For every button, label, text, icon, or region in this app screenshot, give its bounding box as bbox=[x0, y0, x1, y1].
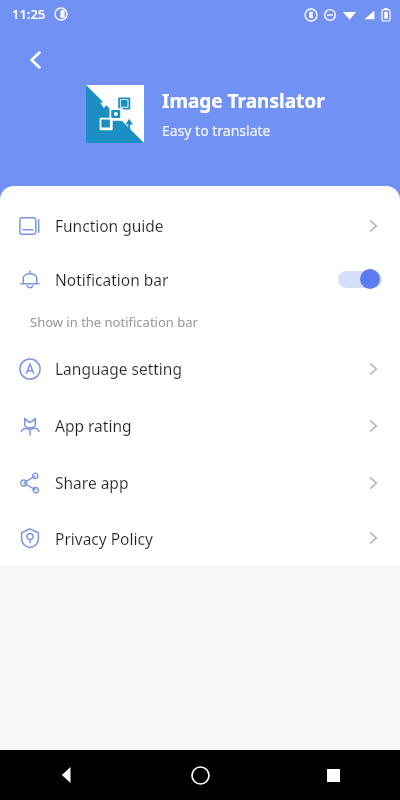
button[interactable]: App rating bbox=[0, 397, 400, 454]
staticText: 11:25 bbox=[12, 5, 46, 23]
staticText: Show in the notification bar bbox=[30, 313, 198, 331]
button[interactable]: Notification bar bbox=[0, 254, 400, 340]
staticText: Image Translator bbox=[162, 88, 325, 114]
button[interactable]: Home bbox=[134, 750, 267, 800]
staticText: Notification bar bbox=[55, 269, 169, 290]
button[interactable]: Back bbox=[14, 38, 58, 82]
staticText: Easy to translate bbox=[162, 121, 271, 140]
staticText: Language setting bbox=[55, 358, 182, 379]
button[interactable]: Share app bbox=[0, 454, 400, 511]
button[interactable]: Function guide bbox=[0, 197, 400, 254]
button[interactable]: Language setting bbox=[0, 340, 400, 397]
button[interactable]: Back bbox=[0, 750, 134, 800]
staticText: Function guide bbox=[55, 215, 164, 236]
button[interactable]: Privacy Policy bbox=[0, 511, 400, 565]
staticText: Share app bbox=[55, 472, 129, 493]
staticText: App rating bbox=[55, 415, 132, 436]
button[interactable]: Notification bar toggle bbox=[338, 269, 382, 289]
button[interactable]: Recent apps bbox=[267, 750, 400, 800]
staticText: Privacy Policy bbox=[55, 528, 153, 549]
